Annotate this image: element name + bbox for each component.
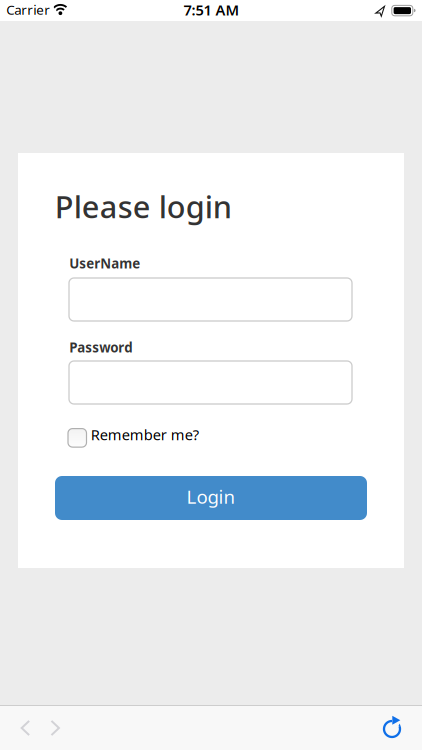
staticText: Carrier — [6, 1, 50, 18]
button[interactable]: Reload — [370, 706, 414, 750]
button[interactable]: Back — [3, 705, 47, 750]
staticText: Remember me? — [91, 425, 199, 444]
staticText: Login — [186, 484, 235, 509]
staticText: UserName — [69, 254, 140, 272]
button[interactable]: Remember me? — [68, 429, 193, 449]
staticText: 7:51 AM — [183, 0, 239, 20]
button[interactable]: Forward — [33, 705, 77, 750]
staticText: Password — [69, 338, 132, 356]
staticText: Please login — [55, 186, 232, 227]
button[interactable]: Login — [55, 476, 367, 520]
